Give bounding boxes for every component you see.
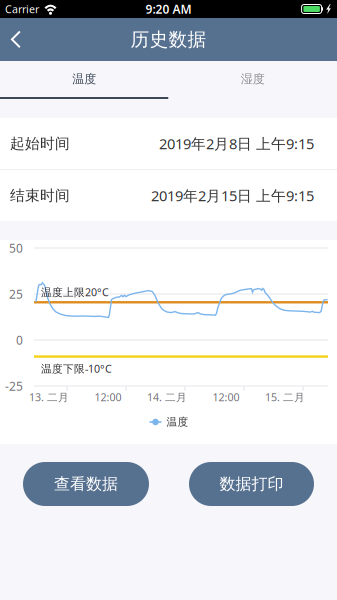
staticText: 12:00 [212,390,239,404]
staticText: 12:00 [94,390,121,404]
staticText: 14. 二月 [147,390,187,404]
staticText: -25 [5,378,23,394]
staticText: Carrier [5,2,39,16]
button[interactable]: 数据打印 [189,462,314,506]
button[interactable]: 查看数据 [23,462,149,506]
staticText: 2019年2月8日 上午9:15 [159,134,314,153]
staticText: 数据打印 [219,474,283,494]
staticText: 15. 二月 [265,390,305,404]
staticText: 查看数据 [54,474,118,494]
staticText: 25 [9,286,23,302]
staticText: 起始时间 [10,134,70,152]
staticText: 13. 二月 [29,390,69,404]
staticText: 2019年2月15日 上午9:15 [151,186,314,205]
staticText: 温度上限20°C [41,285,109,299]
staticText: 湿度 [241,72,265,86]
staticText: 历史数据 [130,28,206,51]
staticText: 温度 [166,415,188,428]
staticText: 9:20 AM [145,1,191,17]
button[interactable]: 温度 [0,61,168,97]
button[interactable]: 湿度 [168,61,337,97]
button[interactable]: Back [0,19,36,60]
staticText: 0 [16,332,23,348]
staticText: 温度 [72,72,96,86]
staticText: 结束时间 [10,186,70,204]
staticText: 50 [9,240,23,256]
staticText: 温度下限-10°C [41,361,112,376]
